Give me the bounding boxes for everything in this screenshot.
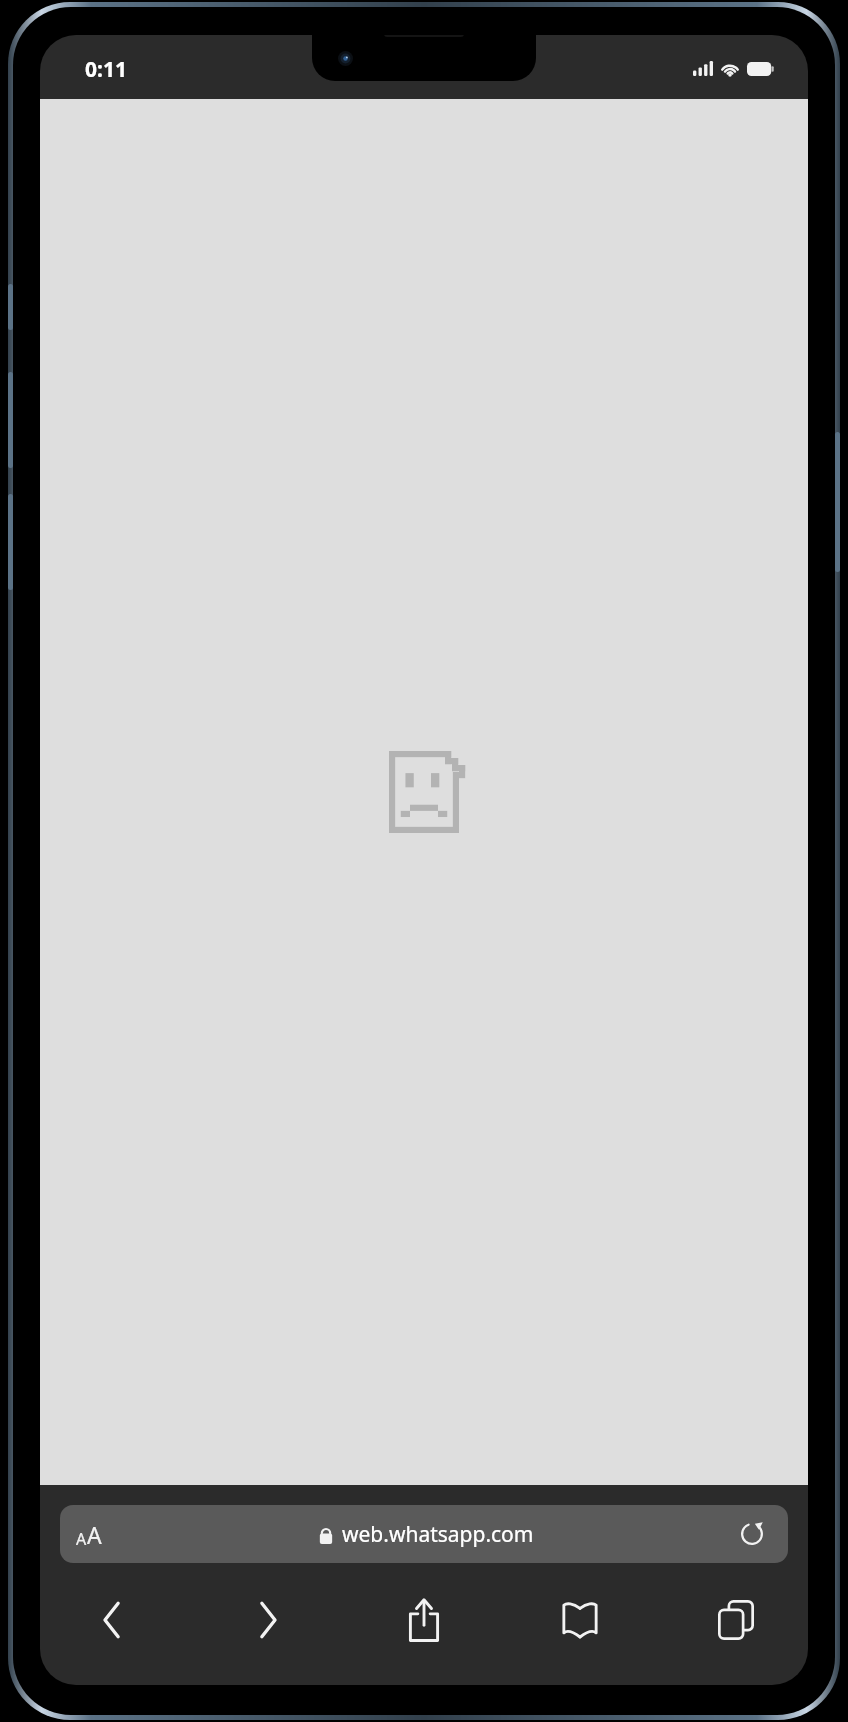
button[interactable]: Back [62,1589,162,1651]
staticText: web.whatsapp.com [342,1520,534,1549]
button[interactable]: Reload [732,1514,772,1554]
staticText: A [87,1519,102,1550]
button[interactable]: Tabs [686,1589,786,1651]
button[interactable]: Forward [218,1589,318,1651]
button[interactable]: Bookmarks [530,1589,630,1651]
button[interactable]: Text size [60,1505,788,1563]
button[interactable]: Text size [76,1512,120,1556]
staticText: 0:11 [85,55,127,84]
staticText: A [76,1528,87,1550]
button[interactable]: Share [374,1589,474,1651]
